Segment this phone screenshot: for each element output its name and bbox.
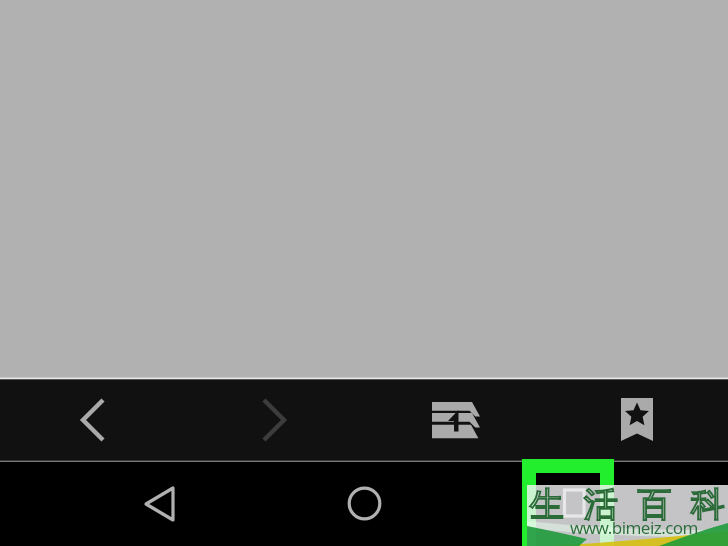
button[interactable]: Back (120, 462, 200, 546)
button[interactable]: Tabs (426, 379, 490, 460)
button[interactable]: Home (324, 462, 404, 546)
button[interactable]: Bookmark (606, 379, 668, 460)
staticText: www.bimeiz.com (570, 516, 698, 539)
button[interactable]: Recent apps (528, 462, 608, 546)
staticText: 生活百科 (530, 483, 728, 526)
button[interactable]: Forward (234, 379, 294, 460)
button[interactable]: Back (53, 379, 113, 460)
